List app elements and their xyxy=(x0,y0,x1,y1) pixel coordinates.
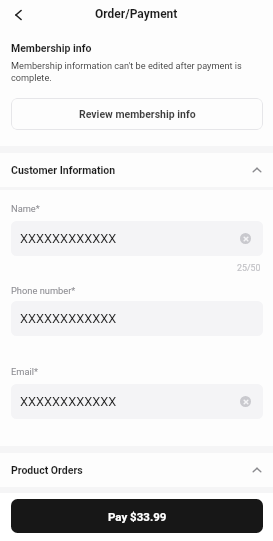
button[interactable]: Clear text xyxy=(240,396,251,407)
staticText: Pay $33.99 xyxy=(108,510,167,523)
button[interactable]: Customer Information xyxy=(0,153,273,187)
other: Collapse section xyxy=(249,462,265,478)
staticText: Product Orders xyxy=(11,464,83,476)
button[interactable]: XXXXXXXXXXXX xyxy=(11,301,263,336)
button[interactable]: Back xyxy=(4,4,26,26)
button[interactable]: Pay $33.99 xyxy=(11,499,263,533)
staticText: Name* xyxy=(11,203,40,214)
staticText: Customer Information xyxy=(11,164,116,176)
staticText: Membership info xyxy=(11,42,92,54)
staticText: Membership information can't be edited a… xyxy=(11,60,263,83)
button[interactable]: Review membership info xyxy=(11,98,263,130)
staticText: Review membership info xyxy=(79,108,196,120)
staticText: Phone number* xyxy=(11,285,76,296)
button[interactable]: XXXXXXXXXXXX xyxy=(11,384,263,419)
staticText: 25/50 xyxy=(237,263,261,273)
staticText: XXXXXXXXXXXX xyxy=(20,231,117,246)
staticText: Email* xyxy=(11,366,39,377)
button[interactable]: Clear text xyxy=(240,233,251,244)
staticText: Order/Payment xyxy=(95,7,178,21)
staticText: XXXXXXXXXXXX xyxy=(20,311,117,326)
button[interactable]: XXXXXXXXXXXX xyxy=(11,221,263,256)
other: Collapse section xyxy=(249,162,265,178)
staticText: XXXXXXXXXXXX xyxy=(20,394,117,409)
button[interactable]: Product Orders xyxy=(0,453,273,487)
